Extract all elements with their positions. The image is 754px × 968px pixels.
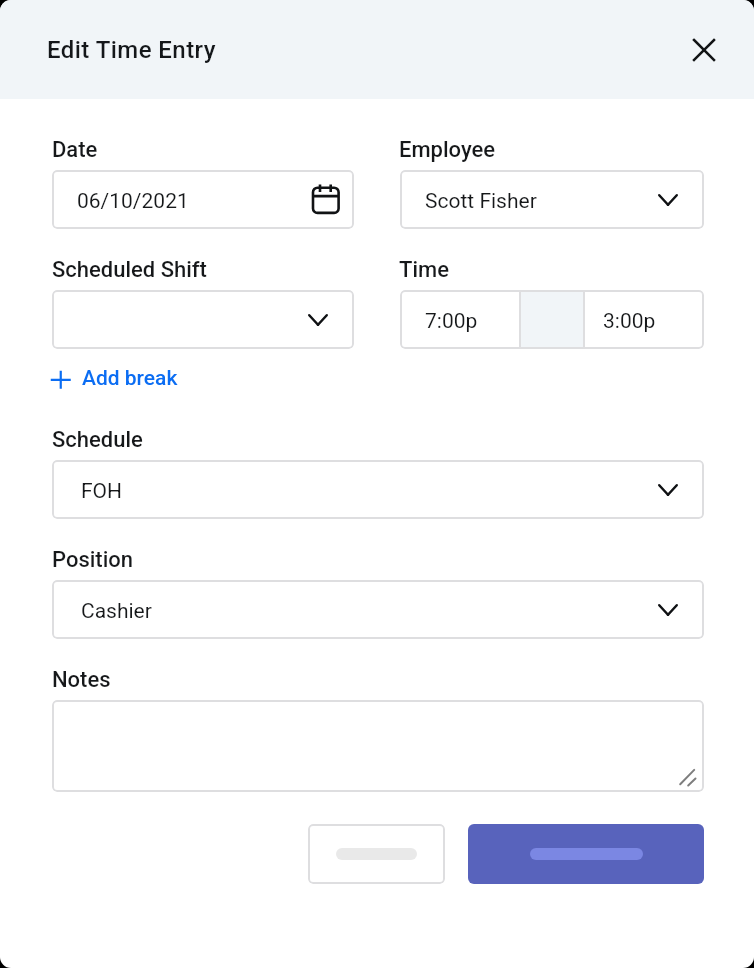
staticText: FOH [81, 479, 123, 504]
button[interactable]: Cancel [308, 824, 445, 884]
button[interactable]: 06/10/2021 [52, 170, 354, 229]
button[interactable]: FOH [52, 460, 704, 519]
button[interactable]: Cashier [52, 580, 704, 639]
staticText: Position [52, 547, 133, 573]
button[interactable]: Add break [52, 366, 186, 394]
button[interactable]: Break [519, 290, 585, 349]
staticText: Time [399, 257, 449, 283]
staticText: Edit Time Entry [47, 36, 216, 64]
button[interactable] [52, 290, 354, 349]
staticText: Add break [82, 366, 178, 391]
staticText: Scott Fisher [425, 189, 537, 214]
staticText: Cashier [81, 599, 152, 624]
button[interactable]: Save [468, 824, 704, 884]
button[interactable]: 3:00p [585, 290, 704, 349]
staticText: 3:00p [603, 309, 656, 334]
staticText: Schedule [52, 427, 143, 453]
staticText: 06/10/2021 [77, 189, 189, 214]
staticText: Date [52, 137, 98, 163]
button[interactable]: 7:00p [400, 290, 519, 349]
staticText: Scheduled Shift [52, 257, 207, 283]
staticText: Notes [52, 667, 111, 693]
staticText: 7:00p [425, 309, 478, 334]
staticText: Employee [399, 137, 496, 163]
button[interactable] [52, 700, 704, 792]
button[interactable]: Close [682, 28, 726, 72]
button[interactable]: Scott Fisher [400, 170, 704, 229]
